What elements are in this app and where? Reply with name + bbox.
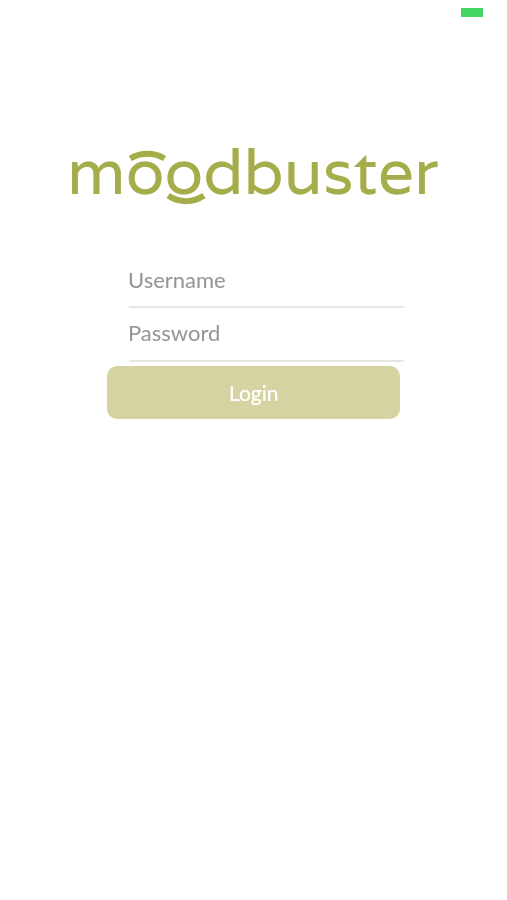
button[interactable]: Password — [107, 315, 404, 362]
staticText: Login — [229, 380, 279, 405]
button[interactable]: Login — [107, 366, 400, 419]
staticText: Password — [128, 319, 221, 345]
button[interactable]: Username — [107, 262, 404, 308]
staticText: moodbuster — [67, 129, 439, 212]
staticText: Username — [128, 266, 226, 292]
